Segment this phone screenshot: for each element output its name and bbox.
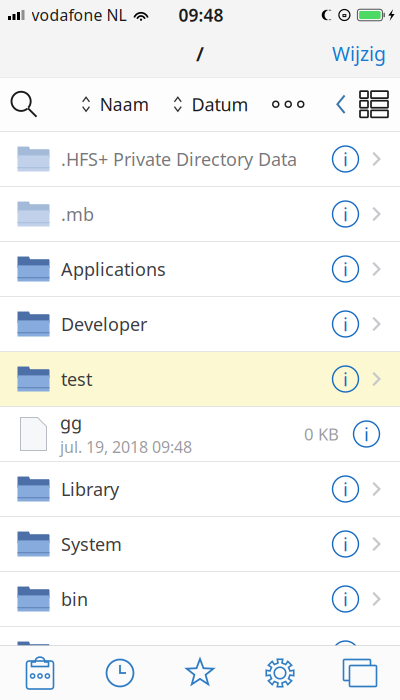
staticText: i: [343, 366, 348, 392]
staticText: i: [343, 476, 348, 502]
button[interactable]: .HFS+ Private Directory Data: [0, 132, 400, 187]
button[interactable]: gg: [0, 407, 400, 462]
staticText: gg: [60, 410, 82, 435]
staticText: jul. 19, 2018 09:48: [60, 436, 192, 458]
button[interactable]: Search: [0, 82, 48, 126]
button[interactable]: More: [263, 82, 313, 126]
staticText: .HFS+ Private Directory Data: [61, 147, 297, 171]
staticText: System: [61, 532, 122, 556]
button[interactable]: test: [0, 352, 400, 407]
staticText: Wijzig: [332, 40, 386, 67]
staticText: bin: [61, 587, 88, 611]
button[interactable]: Recents: [80, 659, 160, 687]
staticText: /: [196, 40, 204, 67]
button[interactable]: Favorites: [160, 659, 240, 687]
staticText: i: [343, 311, 348, 337]
button[interactable]: Settings: [240, 658, 320, 687]
button[interactable]: View mode: [354, 82, 394, 126]
staticText: test: [61, 367, 92, 391]
staticText: vodafone NL: [31, 4, 126, 26]
button[interactable]: Applications: [0, 242, 400, 297]
staticText: i: [343, 586, 348, 612]
staticText: i: [343, 531, 348, 557]
staticText: 09:48: [178, 3, 223, 26]
button[interactable]: bin: [0, 572, 400, 627]
staticText: Developer: [61, 312, 147, 336]
staticText: cores: [61, 642, 107, 666]
button[interactable]: Library: [0, 462, 400, 517]
staticText: Applications: [61, 257, 166, 281]
staticText: i: [343, 256, 348, 282]
staticText: i: [343, 201, 348, 227]
staticText: i: [364, 421, 369, 447]
button[interactable]: Back: [328, 82, 354, 126]
staticText: 0 KB: [304, 423, 339, 445]
button[interactable]: Developer: [0, 297, 400, 352]
button[interactable]: Windows: [320, 659, 400, 686]
button[interactable]: Wijzig: [320, 32, 398, 75]
staticText: Naam: [100, 92, 149, 116]
staticText: i: [343, 146, 348, 172]
button[interactable]: Naam: [63, 82, 149, 126]
button[interactable]: Clipboard: [0, 657, 80, 689]
staticText: Library: [61, 477, 119, 501]
button[interactable]: cores: [0, 627, 400, 682]
button[interactable]: System: [0, 517, 400, 572]
button[interactable]: .mb: [0, 187, 400, 242]
staticText: i: [343, 641, 348, 667]
staticText: Datum: [191, 92, 248, 116]
staticText: .mb: [61, 202, 94, 226]
button[interactable]: Datum: [163, 82, 248, 126]
